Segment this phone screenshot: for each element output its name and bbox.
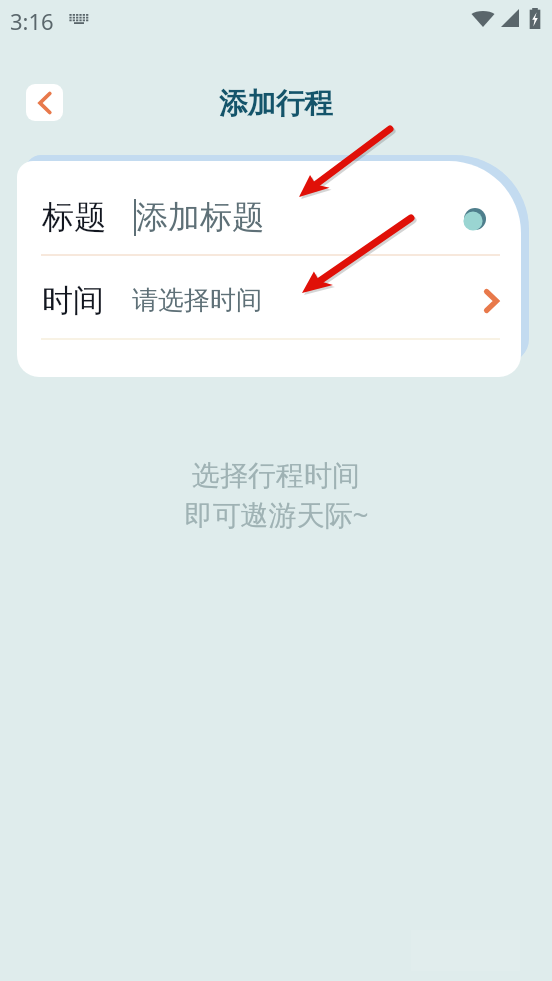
staticText: 选择行程时间 — [192, 458, 360, 493]
button[interactable]: 标题 — [17, 161, 521, 256]
staticText: 请选择时间 — [132, 284, 262, 317]
button[interactable]: Back — [26, 84, 63, 121]
staticText: 标题 — [42, 197, 106, 237]
staticText: 3:16 — [10, 6, 54, 36]
button[interactable]: 时间 — [17, 256, 521, 340]
staticText: 时间 — [42, 281, 104, 320]
staticText: 添加行程 — [219, 86, 333, 122]
staticText: 添加标题 — [136, 197, 264, 237]
staticText: 即可遨游天际~ — [184, 495, 369, 533]
